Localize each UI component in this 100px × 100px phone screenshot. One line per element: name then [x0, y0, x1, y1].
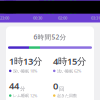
staticText: 分: [20, 85, 25, 92]
staticText: 起きた回数: [57, 93, 77, 98]
staticText: 浅い睡眠 62%: [57, 68, 81, 73]
staticText: 深い睡眠 18%: [13, 68, 37, 73]
staticText: 0: [53, 80, 58, 92]
staticText: 23:00: [0, 15, 9, 20]
staticText: 6時間52分: [33, 32, 66, 41]
staticText: 1時13分: [9, 55, 42, 67]
staticText: 44: [9, 79, 19, 92]
staticText: レム睡眠 12%: [13, 93, 37, 98]
staticText: 4時15分: [53, 55, 86, 67]
staticText: 00:30: [33, 15, 42, 20]
staticText: 03:31: [91, 15, 100, 20]
staticText: 回: [59, 86, 64, 92]
staticText: 02:00: [58, 15, 67, 20]
